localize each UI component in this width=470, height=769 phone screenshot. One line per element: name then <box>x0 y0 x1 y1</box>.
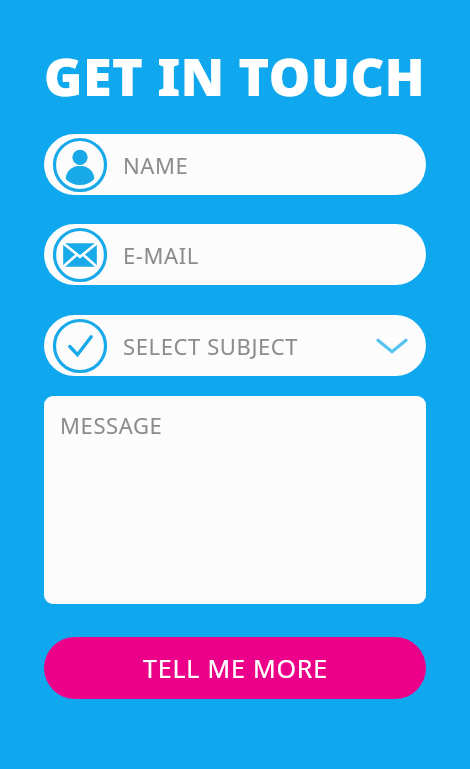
staticText: GET IN TOUCH <box>44 40 426 111</box>
staticText: E-MAIL <box>123 240 199 270</box>
staticText: SELECT SUBJECT <box>123 331 299 361</box>
other: NAME <box>53 138 107 192</box>
button[interactable]: NAME <box>44 134 426 195</box>
button[interactable]: E-MAIL <box>44 224 426 285</box>
staticText: TELL ME MORE <box>143 651 328 685</box>
button[interactable]: MESSAGE <box>44 396 426 604</box>
button[interactable]: SELECT SUBJECT <box>44 315 426 376</box>
other: SELECT SUBJECT <box>53 319 107 373</box>
other: E-MAIL <box>53 228 107 282</box>
staticText: MESSAGE <box>60 410 163 440</box>
button[interactable]: TELL ME MORE <box>44 637 426 699</box>
staticText: NAME <box>123 150 189 180</box>
